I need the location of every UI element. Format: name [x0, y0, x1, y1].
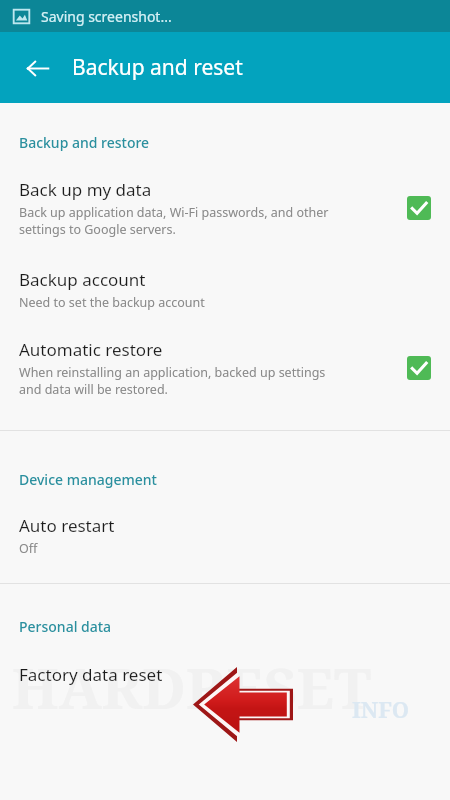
staticText: Need to set the backup account	[19, 294, 205, 311]
staticText: Saving screenshot...	[41, 7, 172, 26]
staticText: Backup account	[19, 268, 146, 291]
staticText: When reinstalling an application, backed…	[19, 364, 326, 398]
button[interactable]: Automatic restore	[0, 311, 450, 398]
staticText: Backup and reset	[72, 53, 243, 82]
staticText: Personal data	[19, 617, 112, 636]
button[interactable]: Toggle Back up my data	[407, 196, 431, 220]
staticText: INFO	[352, 694, 410, 724]
button[interactable]: Factory data reset	[0, 636, 450, 713]
staticText: Device management	[19, 470, 157, 489]
staticText: Back up my data	[19, 178, 152, 201]
staticText: Back up application data, Wi-Fi password…	[19, 204, 329, 238]
button[interactable]: Navigate up	[13, 44, 61, 92]
staticText: Off	[19, 540, 38, 557]
staticText: Automatic restore	[19, 338, 163, 361]
button[interactable]: Toggle Automatic restore	[407, 356, 431, 380]
button[interactable]: Backup account	[0, 238, 450, 311]
staticText: Factory data reset	[19, 663, 163, 686]
button[interactable]: Back up my data	[0, 152, 450, 238]
staticText: Auto restart	[19, 514, 115, 537]
button[interactable]: Auto restart	[0, 489, 450, 557]
staticText: HARDRESET	[12, 648, 372, 726]
staticText: Backup and restore	[19, 133, 150, 152]
